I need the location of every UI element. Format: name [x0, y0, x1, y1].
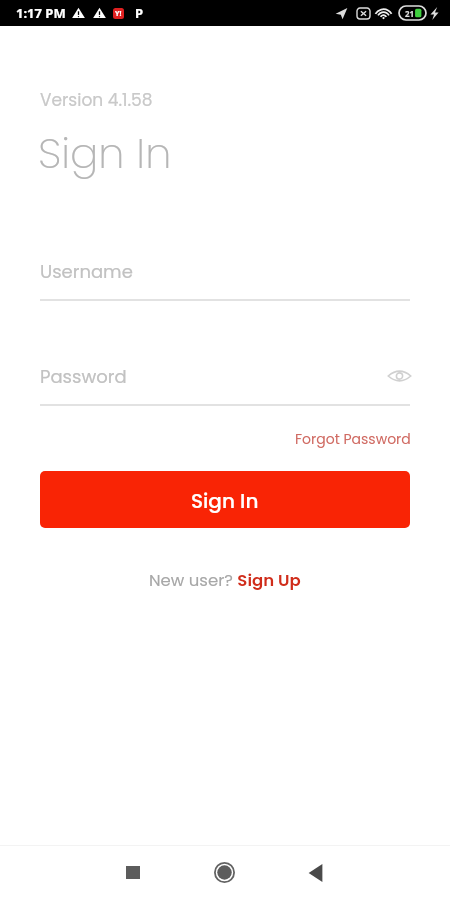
staticText: Sign In [191, 487, 259, 515]
staticText: P [135, 4, 144, 22]
staticText: Y! [115, 9, 122, 19]
staticText: Forgot Password [295, 429, 411, 449]
button[interactable]: Username [40, 256, 410, 301]
button[interactable]: Show password [386, 363, 412, 389]
button[interactable]: Forgot Password [40, 429, 411, 449]
button[interactable]: Password [40, 361, 410, 406]
button[interactable]: Recents [110, 850, 155, 895]
button[interactable]: Back [293, 850, 338, 895]
button[interactable]: Sign In [40, 471, 410, 528]
button[interactable]: Home [202, 850, 247, 895]
button[interactable]: New user? Sign Up [149, 569, 301, 592]
staticText: Version 4.1.58 [40, 88, 153, 112]
staticText: Username [40, 259, 133, 284]
staticText: 21 [405, 8, 415, 19]
staticText: Sign In [38, 124, 172, 183]
staticText: 1:17 PM [16, 4, 66, 22]
staticText: Password [40, 364, 127, 389]
